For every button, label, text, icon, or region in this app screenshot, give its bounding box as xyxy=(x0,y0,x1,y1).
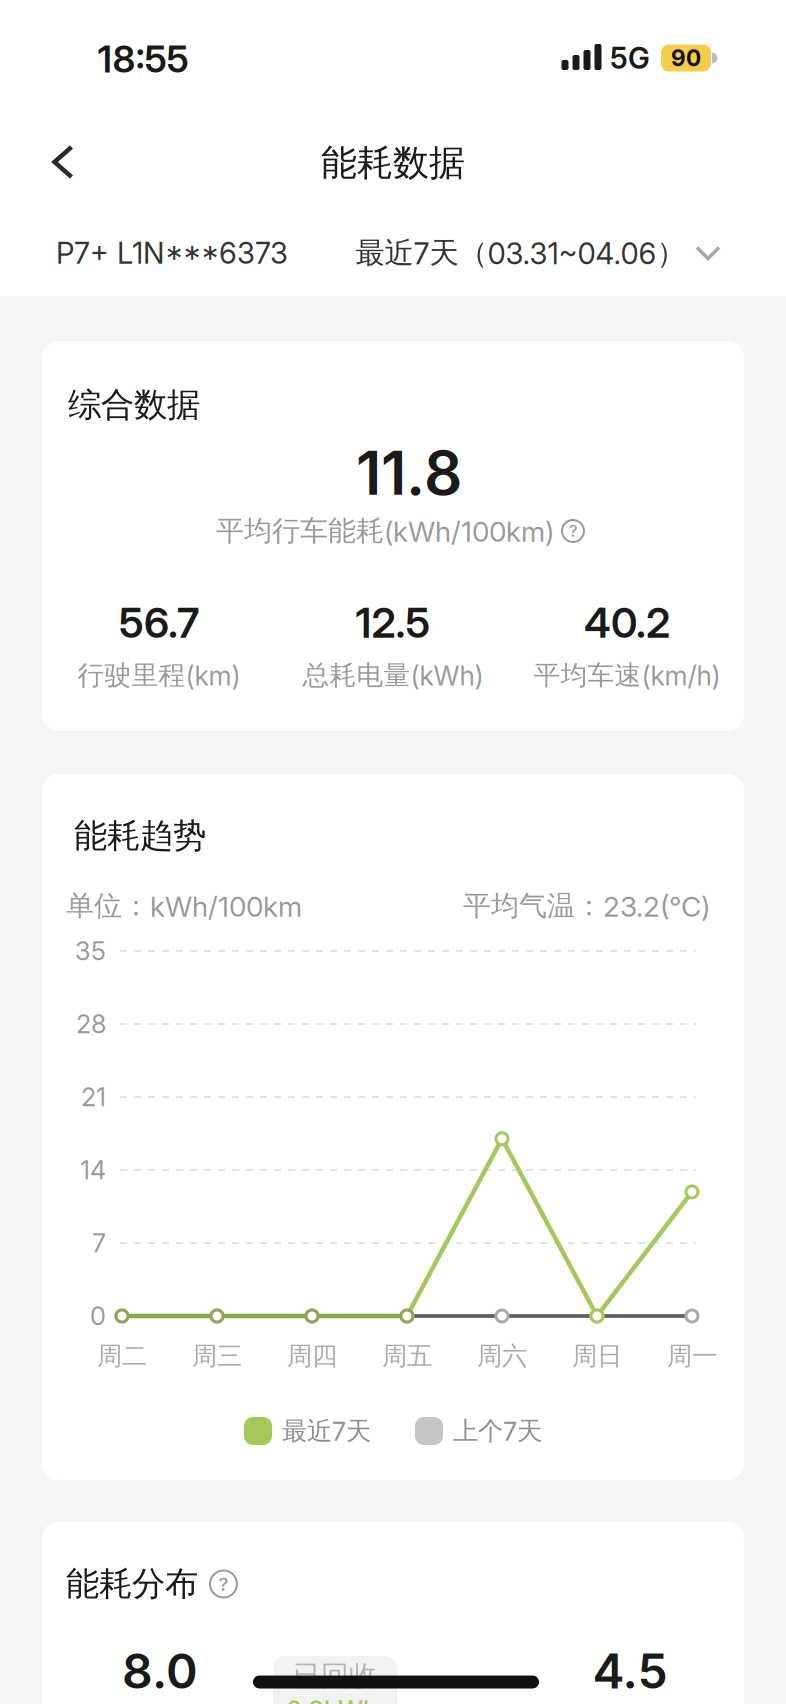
staticText: 行驶里程(km) xyxy=(77,659,240,692)
staticText: 单位：kWh/100km xyxy=(66,889,302,923)
button[interactable]: 说明 xyxy=(562,520,584,542)
staticText: 周五 xyxy=(382,1340,432,1371)
staticText: 14 xyxy=(80,1155,106,1185)
staticText: 平均行车能耗(kWh/100km) xyxy=(216,514,554,548)
staticText: 90 xyxy=(671,45,701,71)
staticText: 0.0kWh xyxy=(286,1695,378,1704)
staticText: 已回收 xyxy=(293,1659,377,1693)
staticText: 4.5 xyxy=(592,1643,667,1699)
staticText: 21 xyxy=(81,1082,106,1112)
staticText: 40.2 xyxy=(584,598,670,647)
staticText: 周三 xyxy=(192,1340,242,1371)
staticText: 8.0 xyxy=(122,1643,198,1699)
staticText: 5G xyxy=(610,41,650,75)
staticText: 平均气温：23.2(°C) xyxy=(463,889,710,923)
staticText: 能耗趋势 xyxy=(74,815,206,856)
staticText: 18:55 xyxy=(97,37,188,81)
button[interactable]: 最近7天（03.31~04.06） xyxy=(355,227,720,279)
staticText: 周日 xyxy=(572,1340,622,1371)
staticText: 35 xyxy=(75,936,106,966)
staticText: 总耗电量(kWh) xyxy=(302,659,483,692)
staticText: 能耗分布 xyxy=(66,1563,198,1604)
staticText: 最近7天 xyxy=(282,1415,371,1446)
staticText: 11.8 xyxy=(356,438,462,508)
staticText: 7 xyxy=(92,1228,106,1258)
staticText: ? xyxy=(218,1573,228,1595)
staticText: 12.5 xyxy=(355,598,430,647)
staticText: 周二 xyxy=(97,1340,147,1371)
staticText: 综合数据 xyxy=(68,384,200,425)
staticText: 周一 xyxy=(667,1340,717,1371)
staticText: 28 xyxy=(76,1009,106,1039)
staticText: 最近7天（03.31~04.06） xyxy=(355,235,685,271)
staticText: 周四 xyxy=(287,1340,337,1371)
button[interactable]: P7+ L1N***6373 xyxy=(56,228,288,278)
staticText: 上个7天 xyxy=(453,1415,542,1446)
staticText: 周六 xyxy=(477,1340,527,1371)
staticText: 平均车速(km/h) xyxy=(533,659,720,692)
staticText: 能耗数据 xyxy=(321,141,465,185)
staticText: ? xyxy=(569,522,577,540)
staticText: P7+ L1N***6373 xyxy=(56,236,288,270)
staticText: 0 xyxy=(90,1301,106,1331)
button[interactable]: 说明 xyxy=(210,1570,237,1597)
button[interactable]: 返回 xyxy=(39,132,87,191)
staticText: 56.7 xyxy=(119,598,199,647)
